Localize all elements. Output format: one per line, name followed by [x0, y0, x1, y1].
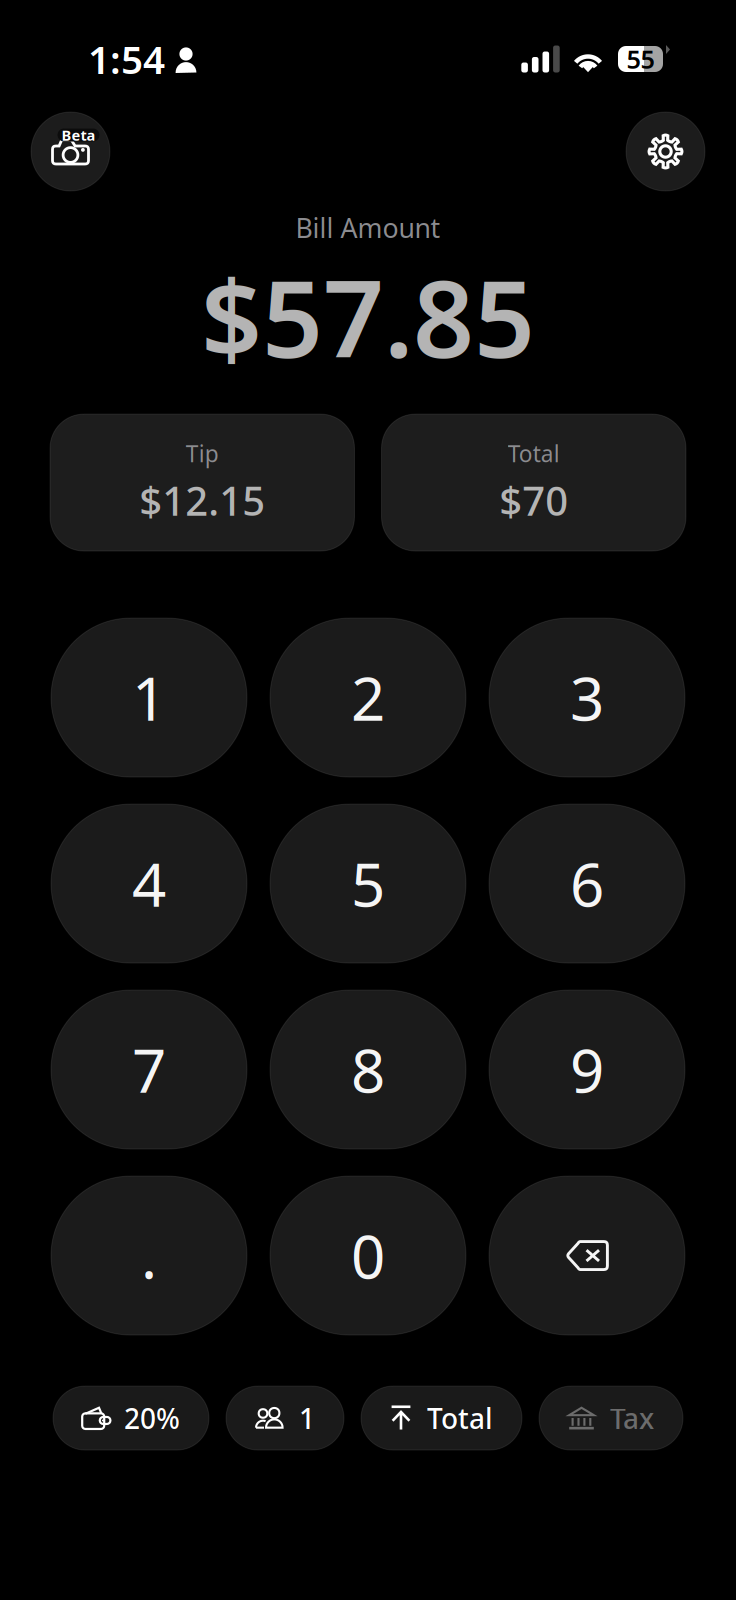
- staticText: 4: [132, 844, 166, 923]
- staticText: Total: [508, 438, 560, 469]
- button[interactable]: Tax: [539, 1386, 683, 1450]
- staticText: 5: [351, 844, 385, 923]
- button[interactable]: 20%: [53, 1386, 209, 1450]
- button[interactable]: 4: [51, 804, 247, 963]
- button[interactable]: 2: [270, 618, 466, 777]
- button[interactable]: 1: [51, 618, 247, 777]
- staticText: Tax: [610, 1399, 654, 1437]
- staticText: 8: [351, 1030, 385, 1109]
- staticText: 20%: [124, 1399, 180, 1437]
- staticText: 1: [132, 658, 166, 737]
- staticText: .: [141, 1216, 157, 1295]
- button[interactable]: Settings: [626, 112, 705, 191]
- staticText: Tip: [186, 438, 219, 469]
- staticText: $12.15: [139, 474, 265, 527]
- staticText: 6: [570, 844, 604, 923]
- staticText: $57.85: [201, 245, 535, 387]
- staticText: Beta: [61, 125, 95, 145]
- staticText: 0: [351, 1216, 385, 1295]
- staticText: Total: [427, 1399, 493, 1437]
- staticText: 2: [351, 658, 385, 737]
- staticText: 7: [132, 1030, 166, 1109]
- button[interactable]: Scan receipt: [31, 112, 110, 191]
- staticText: 1: [299, 1399, 315, 1437]
- staticText: 1:54: [88, 33, 165, 85]
- button[interactable]: Tip: [50, 414, 354, 551]
- button[interactable]: Total: [361, 1386, 522, 1450]
- staticText: 3: [570, 658, 604, 737]
- button[interactable]: 3: [489, 618, 685, 777]
- staticText: 9: [570, 1030, 604, 1109]
- staticText: 55: [626, 42, 654, 76]
- button[interactable]: Total: [381, 414, 686, 551]
- staticText: Bill Amount: [295, 210, 440, 245]
- button[interactable]: 1: [226, 1386, 344, 1450]
- button[interactable]: 9: [489, 990, 685, 1149]
- button[interactable]: 6: [489, 804, 685, 963]
- button[interactable]: 8: [270, 990, 466, 1149]
- staticText: $70: [499, 474, 568, 527]
- button[interactable]: [489, 1176, 685, 1335]
- button[interactable]: 7: [51, 990, 247, 1149]
- button[interactable]: 0: [270, 1176, 466, 1335]
- button[interactable]: .: [51, 1176, 247, 1335]
- button[interactable]: 5: [270, 804, 466, 963]
